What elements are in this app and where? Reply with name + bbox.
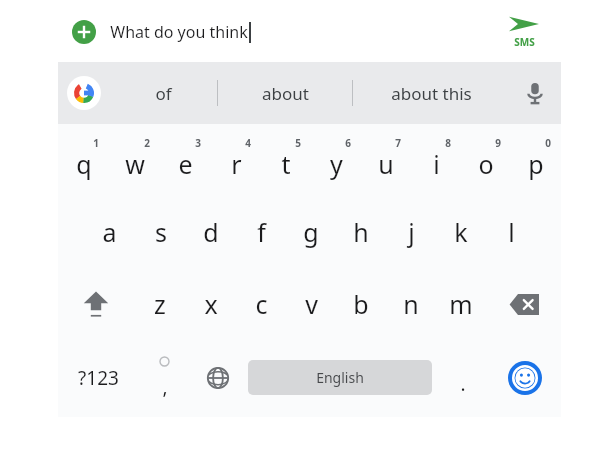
staticText: r (231, 147, 242, 181)
button[interactable]: s (135, 196, 186, 268)
button[interactable]: r (211, 124, 261, 196)
button[interactable]: Add attachment (58, 2, 110, 62)
button[interactable]: Change language (191, 340, 244, 415)
staticText: w (125, 147, 145, 181)
staticText: h (353, 215, 369, 249)
button[interactable]: p (511, 124, 561, 196)
button[interactable]: about (218, 62, 352, 124)
staticText: 4 (245, 136, 251, 150)
staticText: f (257, 215, 266, 249)
staticText: k (454, 215, 468, 249)
button[interactable]: of (110, 62, 217, 124)
button[interactable]: b (336, 268, 386, 340)
button[interactable]: q (58, 124, 109, 196)
staticText: 5 (295, 136, 301, 150)
button[interactable]: Comma (138, 340, 191, 415)
button[interactable]: Backspace (486, 268, 561, 340)
button[interactable]: a (84, 196, 135, 268)
button[interactable]: t (261, 124, 311, 196)
staticText: 0 (545, 136, 551, 150)
staticText: t (281, 147, 291, 181)
button[interactable]: i (411, 124, 461, 196)
button[interactable]: o (461, 124, 511, 196)
button[interactable]: c (236, 268, 286, 340)
staticText: x (204, 287, 218, 321)
staticText: p (528, 147, 544, 181)
button[interactable]: w (109, 124, 160, 196)
staticText: 2 (144, 136, 150, 150)
button[interactable]: z (134, 268, 185, 340)
staticText: 7 (395, 136, 401, 150)
button[interactable]: ?123 (58, 340, 138, 415)
button[interactable]: l (486, 196, 536, 268)
staticText: z (154, 287, 166, 321)
staticText: g (303, 215, 319, 249)
button[interactable]: about this (353, 62, 509, 124)
button[interactable]: Google (58, 62, 110, 124)
staticText: . (460, 371, 466, 397)
staticText: 9 (495, 136, 501, 150)
staticText: 8 (445, 136, 451, 150)
staticText: SMS (514, 35, 535, 49)
staticText: 6 (345, 136, 351, 150)
staticText: o (478, 147, 494, 181)
staticText: about (262, 82, 309, 105)
button[interactable]: e (160, 124, 211, 196)
staticText: about this (391, 82, 472, 105)
button[interactable]: Period (436, 340, 489, 415)
button[interactable]: d (186, 196, 236, 268)
staticText: b (353, 287, 369, 321)
staticText: 1 (93, 136, 99, 150)
button[interactable]: m (436, 268, 486, 340)
staticText: English (316, 368, 364, 387)
button[interactable]: k (436, 196, 486, 268)
button[interactable]: English (248, 360, 432, 395)
button[interactable]: h (336, 196, 386, 268)
staticText: What do you think (110, 21, 248, 43)
button[interactable]: n (386, 268, 436, 340)
staticText: e (178, 147, 193, 181)
button[interactable]: j (386, 196, 436, 268)
staticText: , (162, 374, 168, 400)
staticText: a (102, 215, 117, 249)
button[interactable]: Send SMS (487, 2, 561, 62)
button[interactable]: What do you think (110, 2, 487, 62)
staticText: l (508, 215, 515, 249)
staticText: 3 (195, 136, 201, 150)
button[interactable]: f (236, 196, 286, 268)
staticText: s (155, 215, 167, 249)
button[interactable]: g (286, 196, 336, 268)
staticText: u (378, 147, 394, 181)
button[interactable]: Voice input (509, 62, 561, 124)
button[interactable]: Emoji (489, 340, 561, 415)
staticText: ?123 (78, 365, 119, 391)
button[interactable]: x (185, 268, 236, 340)
staticText: c (255, 287, 268, 321)
button[interactable]: v (286, 268, 336, 340)
staticText: i (433, 147, 440, 181)
staticText: v (305, 287, 318, 321)
staticText: d (203, 215, 219, 249)
staticText: q (76, 147, 92, 181)
button[interactable]: u (361, 124, 411, 196)
staticText: j (408, 215, 415, 249)
staticText: y (330, 147, 343, 181)
staticText: n (403, 287, 419, 321)
staticText: m (449, 287, 473, 321)
button[interactable]: Shift (58, 268, 134, 340)
staticText: of (155, 82, 172, 105)
button[interactable]: y (311, 124, 361, 196)
